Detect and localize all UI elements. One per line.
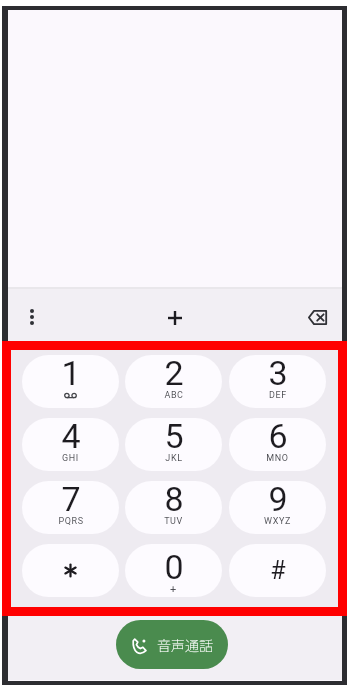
staticText: 4 xyxy=(61,418,81,456)
button[interactable]: # xyxy=(229,544,326,597)
button[interactable]: 音声通話 xyxy=(116,620,228,669)
staticText: JKL xyxy=(165,453,183,464)
staticText: 1 xyxy=(61,355,81,393)
staticText: PQRS xyxy=(58,516,84,527)
staticText: TUV xyxy=(164,516,183,527)
button[interactable]: 5 xyxy=(125,418,222,471)
staticText: MNO xyxy=(266,453,289,464)
button[interactable]: 3 xyxy=(229,355,326,408)
button[interactable] xyxy=(22,544,119,597)
button[interactable]: 0 xyxy=(125,544,222,597)
staticText: 9 xyxy=(268,481,288,519)
button[interactable]: 2 xyxy=(125,355,222,408)
staticText: 音声通話 xyxy=(157,635,213,655)
staticText: 8 xyxy=(164,481,184,519)
staticText: 7 xyxy=(61,481,81,519)
button[interactable]: 4 xyxy=(22,418,119,471)
staticText: WXYZ xyxy=(264,516,291,527)
staticText: DEF xyxy=(269,390,287,401)
button[interactable]: 6 xyxy=(229,418,326,471)
button[interactable]: 1 xyxy=(22,355,119,408)
staticText: 5 xyxy=(164,418,184,456)
staticText: ABC xyxy=(164,390,184,401)
button[interactable] xyxy=(155,298,195,338)
staticText: # xyxy=(270,556,286,585)
staticText: 2 xyxy=(164,355,184,393)
button[interactable] xyxy=(12,297,52,337)
button[interactable]: 9 xyxy=(229,481,326,534)
button[interactable] xyxy=(298,297,338,337)
staticText: GHI xyxy=(62,453,79,464)
staticText: 3 xyxy=(268,355,288,393)
staticText: 6 xyxy=(268,418,288,456)
button[interactable]: 8 xyxy=(125,481,222,534)
staticText: + xyxy=(170,583,177,596)
staticText: 0 xyxy=(164,547,184,587)
button[interactable]: 7 xyxy=(22,481,119,534)
